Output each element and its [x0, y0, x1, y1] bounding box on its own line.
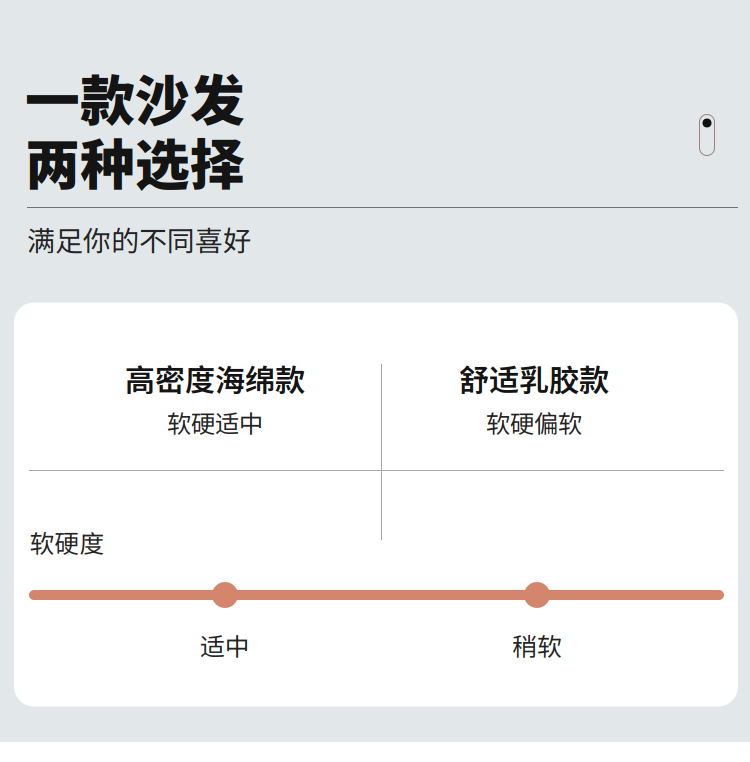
staticText: 软硬偏软 [486, 405, 582, 440]
staticText: 一款沙发 [25, 57, 245, 137]
staticText: 两种选择 [25, 121, 245, 201]
staticText: 适中 [200, 627, 250, 663]
staticText: 高密度海绵款 [125, 356, 305, 399]
staticText: 软硬适中 [167, 405, 263, 440]
button[interactable]: 舒适乳胶款 软硬度 [524, 582, 550, 608]
button[interactable]: 选择 [699, 114, 714, 155]
button[interactable]: 高密度海绵款 软硬度 [212, 582, 238, 608]
button[interactable]: 适中 [200, 627, 250, 663]
staticText: 稍软 [512, 627, 562, 663]
staticText: 舒适乳胶款 [459, 356, 609, 399]
button[interactable]: 舒适乳胶款 [374, 368, 694, 428]
button[interactable]: 稍软 [512, 627, 562, 663]
button[interactable]: 高密度海绵款 [55, 368, 375, 428]
staticText: 软硬度 [29, 524, 104, 560]
staticText: 满足你的不同喜好 [27, 219, 251, 259]
